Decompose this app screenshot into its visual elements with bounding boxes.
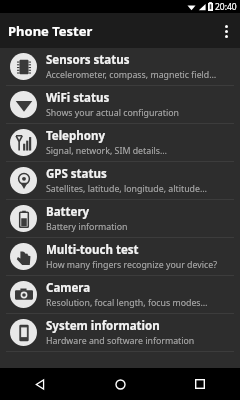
button[interactable]: Sensors status [0, 48, 240, 85]
button[interactable]: WiFi status [0, 86, 240, 123]
staticText: Sensors status [46, 52, 130, 68]
staticText: Accelerometer, compass, magnetic field… [46, 69, 217, 81]
button[interactable]: Home [80, 368, 160, 400]
staticText: Shows your actual configuration [46, 107, 179, 119]
staticText: Resolution, focal length, focus modes… [46, 297, 208, 309]
staticText: Multi-touch test [46, 242, 139, 258]
staticText: Phone Tester [8, 22, 93, 40]
staticText: Battery information [46, 221, 128, 233]
staticText: Camera [46, 280, 91, 296]
button[interactable]: Telephony [0, 124, 240, 161]
button[interactable]: GPS status [0, 162, 240, 199]
staticText: 20:40 [215, 1, 237, 13]
staticText: Signal, network, SIM details… [46, 145, 167, 157]
staticText: Telephony [46, 128, 105, 144]
staticText: How many fingers recognize your device? [46, 259, 218, 271]
button[interactable]: Back [0, 368, 80, 400]
button[interactable]: Battery [0, 200, 240, 237]
staticText: WiFi status [46, 90, 110, 106]
staticText: System information [46, 318, 160, 334]
staticText: Battery [46, 204, 90, 220]
button[interactable]: More options [212, 17, 240, 45]
button[interactable]: Multi-touch test [0, 238, 240, 275]
button[interactable]: Camera [0, 276, 240, 313]
button[interactable]: Recents [160, 368, 240, 400]
staticText: Satellites, latitude, longitude, altitud… [46, 183, 207, 195]
staticText: Hardware and software information [46, 335, 195, 347]
staticText: GPS status [46, 166, 107, 182]
button[interactable]: System information [0, 314, 240, 351]
